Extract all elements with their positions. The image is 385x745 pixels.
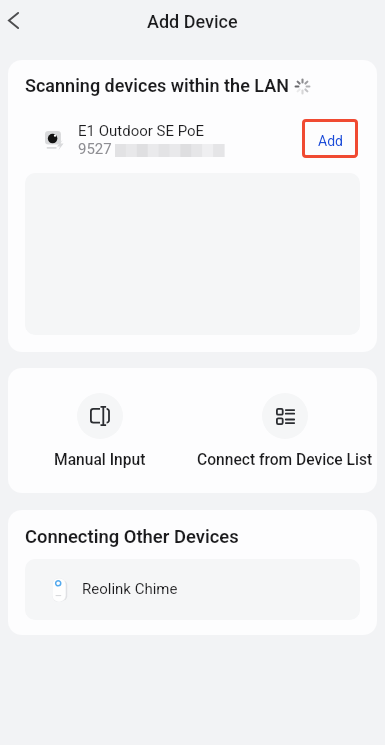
staticText: 9527: [78, 140, 112, 158]
button[interactable]: Connect from Device List: [192, 368, 377, 469]
staticText: Connect from Device List: [197, 451, 373, 469]
staticText: E1 Outdoor SE PoE: [78, 122, 205, 140]
staticText: Manual Input: [54, 451, 146, 469]
button[interactable]: E1 Outdoor SE PoE: [8, 116, 377, 161]
button[interactable]: Back: [0, 0, 34, 42]
button[interactable]: Manual Input: [8, 368, 192, 469]
button[interactable]: Add: [302, 119, 358, 158]
staticText: Connecting Other Devices: [25, 526, 239, 548]
staticText: Scanning devices within the LAN: [25, 75, 289, 96]
staticText: Add Device: [147, 11, 238, 32]
button[interactable]: Reolink Chime: [25, 559, 360, 620]
staticText: Add: [318, 133, 343, 149]
staticText: Reolink Chime: [82, 580, 178, 598]
